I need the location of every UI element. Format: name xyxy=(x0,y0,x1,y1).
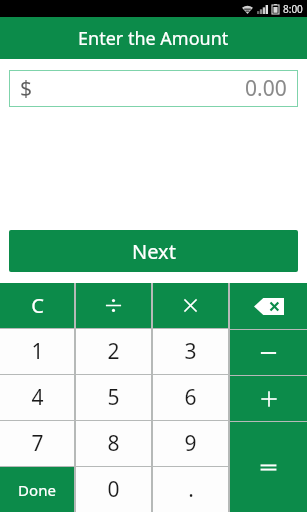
staticText: 2 xyxy=(107,337,120,366)
staticText: 0.00 xyxy=(245,74,287,103)
button[interactable]: Divide xyxy=(76,283,151,328)
button[interactable]: Plus xyxy=(230,376,307,421)
staticText: . xyxy=(188,475,194,504)
staticText: $ xyxy=(20,74,33,103)
button[interactable]: 5 xyxy=(76,375,151,420)
button[interactable]: 9 xyxy=(153,421,228,466)
button[interactable]: 7 xyxy=(0,421,74,466)
staticText: 0 xyxy=(107,475,120,504)
button[interactable]: . xyxy=(153,467,228,512)
staticText: 8:00 xyxy=(283,2,303,16)
staticText: 6 xyxy=(184,383,197,412)
staticText: Next xyxy=(132,238,176,265)
staticText: 1 xyxy=(31,337,44,366)
button[interactable]: Next xyxy=(9,230,298,272)
button[interactable]: 6 xyxy=(153,375,228,420)
staticText: 3 xyxy=(184,337,197,366)
staticText: 7 xyxy=(31,429,44,458)
button[interactable]: 2 xyxy=(76,329,151,374)
button[interactable]: 8 xyxy=(76,421,151,466)
button[interactable]: Done xyxy=(0,467,74,512)
staticText: 9 xyxy=(184,429,197,458)
staticText: 8 xyxy=(107,429,120,458)
staticText: C xyxy=(31,292,44,319)
button[interactable]: 1 xyxy=(0,329,74,374)
button[interactable]: 0 xyxy=(76,467,151,512)
button[interactable]: 3 xyxy=(153,329,228,374)
button[interactable]: Equals xyxy=(230,422,307,512)
button[interactable]: 4 xyxy=(0,375,74,420)
staticText: Done xyxy=(18,480,56,500)
button[interactable]: $ xyxy=(9,70,298,107)
staticText: Enter the Amount xyxy=(78,26,229,51)
staticText: 4 xyxy=(31,383,44,412)
button[interactable]: C xyxy=(0,283,74,328)
button[interactable]: Backspace xyxy=(230,283,307,329)
button[interactable]: Minus xyxy=(230,330,307,375)
staticText: 5 xyxy=(107,383,120,412)
button[interactable]: Multiply xyxy=(153,283,228,328)
